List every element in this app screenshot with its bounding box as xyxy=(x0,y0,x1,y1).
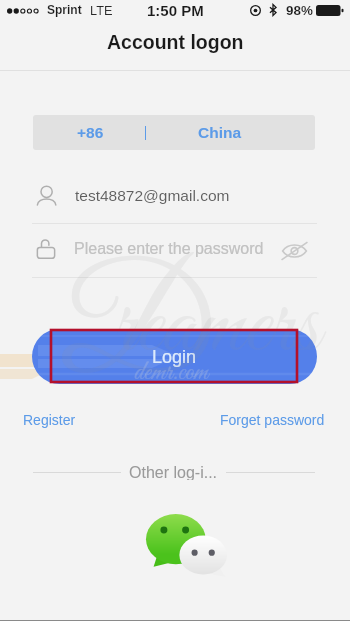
staticText: Forget password xyxy=(220,412,325,428)
button[interactable]: WeChat login xyxy=(146,513,227,578)
button[interactable]: Register xyxy=(22,410,77,430)
staticText: D xyxy=(57,244,210,426)
button[interactable]: Login xyxy=(32,329,317,384)
staticText: 1:50 PM xyxy=(147,2,204,19)
staticText: Register xyxy=(23,412,76,428)
staticText: Login xyxy=(152,347,197,367)
staticText: test48872@gmail.com xyxy=(75,187,230,204)
staticText: China xyxy=(198,124,242,141)
staticText: demr.com xyxy=(134,356,209,390)
staticText: Other log-i... xyxy=(129,464,218,480)
staticText: Please enter the password xyxy=(74,240,264,258)
staticText: demr.com xyxy=(134,356,209,384)
staticText: +86 xyxy=(77,124,104,141)
staticText: reamers xyxy=(112,268,320,388)
staticText: LTE xyxy=(90,3,113,17)
button[interactable]: +86 xyxy=(33,115,315,150)
staticText: Account logon xyxy=(107,31,244,53)
staticText: 98% xyxy=(286,3,313,18)
button[interactable]: Show password xyxy=(281,243,308,259)
staticText: Sprint xyxy=(47,3,82,16)
button[interactable]: Forget password xyxy=(219,410,326,430)
